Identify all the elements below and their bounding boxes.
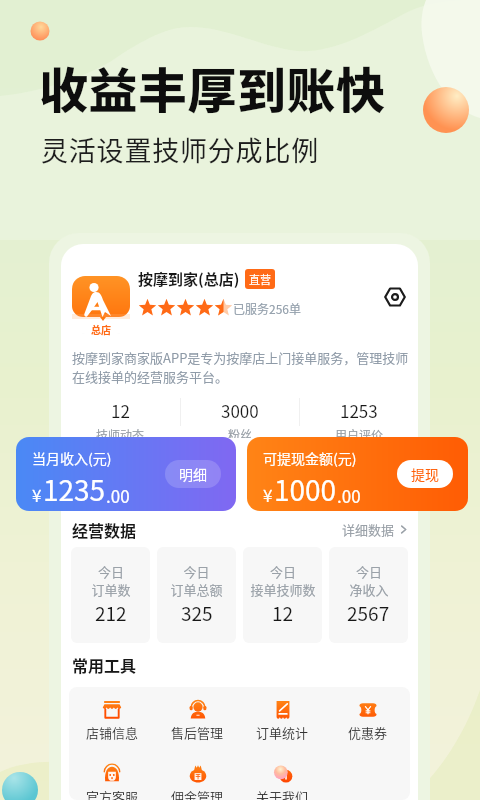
staticText: .00 — [106, 483, 130, 508]
staticText: 佣金管理 — [171, 787, 224, 800]
staticText: 售后管理 — [171, 723, 224, 742]
staticText: 提现 — [411, 464, 439, 484]
staticText: 详细数据 — [342, 520, 395, 539]
staticText: 经营数据 — [72, 518, 137, 541]
staticText: 订单统计 — [256, 723, 309, 742]
staticText: 粉丝 — [228, 426, 253, 438]
staticText: 212 — [95, 599, 127, 627]
button[interactable]: 可提现金额(元) — [247, 437, 468, 511]
staticText: 官方客服 — [86, 787, 139, 800]
staticText: 按摩到家商家版APP是专为按摩店上门接单服务，管理技师在线接单的经营服务平台。 — [72, 348, 413, 386]
staticText: 今日 接单技师数 — [250, 562, 316, 599]
staticText: 2567 — [347, 599, 390, 627]
button[interactable]: 官方客服 — [69, 762, 155, 800]
staticText: 直营 — [249, 271, 271, 287]
button[interactable]: 优惠券 — [325, 698, 410, 742]
staticText: 已服务256单 — [233, 300, 301, 317]
staticText: 用户评价 — [335, 426, 384, 438]
button[interactable]: 售后管理 — [155, 698, 240, 742]
button[interactable]: 今日 订单数 — [71, 547, 150, 643]
staticText: 12 — [272, 599, 294, 627]
staticText: 常用工具 — [72, 653, 137, 676]
button[interactable]: 佣金管理 — [155, 762, 240, 800]
button[interactable]: Settings — [384, 286, 406, 308]
button[interactable]: 关于我们 — [240, 762, 325, 800]
staticText: 325 — [181, 599, 213, 627]
staticText: 今日 订单数 — [91, 562, 131, 599]
staticText: 当月收入(元) — [32, 448, 112, 468]
staticText: 3000 — [221, 398, 259, 423]
staticText: 店铺信息 — [86, 723, 139, 742]
staticText: 按摩到家(总店) — [138, 268, 240, 290]
staticText: 优惠券 — [348, 723, 388, 742]
button[interactable]: 订单统计 — [240, 698, 325, 742]
button[interactable]: 当月收入(元) — [16, 437, 236, 511]
button[interactable]: 12 — [61, 398, 180, 438]
staticText: 关于我们 — [256, 787, 309, 800]
button[interactable]: 详细数据 — [342, 520, 408, 539]
staticText: 灵活设置技师分成比例 — [41, 130, 319, 169]
staticText: 1000 — [274, 469, 337, 510]
staticText: 12 — [111, 398, 130, 423]
staticText: ¥ — [263, 482, 273, 507]
staticText: 1235 — [43, 469, 106, 510]
button[interactable]: 店铺信息 — [69, 698, 155, 742]
staticText: 明细 — [179, 464, 207, 484]
button[interactable]: 提现 — [397, 460, 453, 488]
staticText: 收益丰厚到账快 — [39, 52, 386, 123]
button[interactable]: 1253 — [300, 398, 418, 438]
staticText: 总店 — [91, 322, 111, 336]
staticText: .00 — [337, 483, 361, 508]
button[interactable]: 明细 — [165, 460, 221, 488]
button[interactable]: 3000 — [181, 398, 299, 438]
button[interactable]: 今日 净收入 — [329, 547, 408, 643]
staticText: 可提现金额(元) — [263, 448, 357, 468]
staticText: 今日 净收入 — [349, 562, 389, 599]
staticText: 技师动态 — [96, 426, 145, 438]
button[interactable]: 今日 订单总额 — [157, 547, 236, 643]
staticText: 1253 — [340, 398, 378, 423]
button[interactable]: 今日 接单技师数 — [243, 547, 322, 643]
staticText: 今日 订单总额 — [170, 562, 223, 599]
staticText: ¥ — [32, 482, 42, 507]
